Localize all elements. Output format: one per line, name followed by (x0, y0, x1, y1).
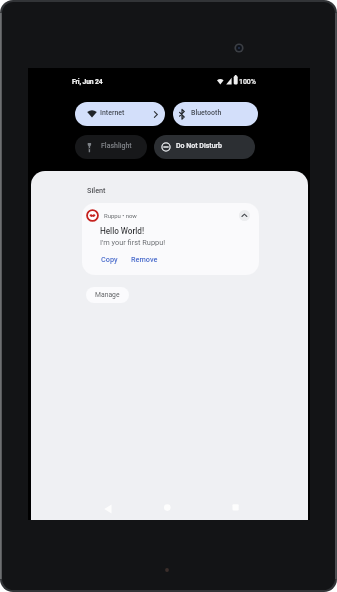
staticText: Do Not Disturb (176, 142, 222, 150)
staticText: Silent (87, 186, 106, 195)
button[interactable]: Ruppu • now (82, 203, 259, 275)
staticText: Internet (100, 109, 125, 117)
button[interactable] (159, 500, 175, 516)
button[interactable]: Manage (86, 287, 129, 303)
button[interactable] (239, 210, 250, 221)
button[interactable] (100, 500, 116, 516)
staticText: I'm your first Ruppu! (100, 238, 166, 247)
staticText: Manage (95, 291, 120, 299)
staticText: Hello World! (100, 226, 145, 236)
staticText: Ruppu • now (104, 212, 137, 219)
button[interactable] (228, 500, 244, 516)
button[interactable]: Do Not Disturb (154, 135, 255, 159)
button[interactable]: Remove (82, 203, 109, 212)
staticText: Bluetooth (191, 109, 222, 117)
staticText: Fri, Jun 24 (72, 78, 103, 86)
button[interactable]: Copy (82, 203, 99, 212)
button[interactable]: Bluetooth (173, 102, 258, 126)
button[interactable]: Flashlight (75, 135, 147, 159)
staticText: 100% (239, 78, 256, 86)
staticText: Flashlight (101, 142, 132, 150)
button[interactable]: Internet (75, 102, 165, 126)
